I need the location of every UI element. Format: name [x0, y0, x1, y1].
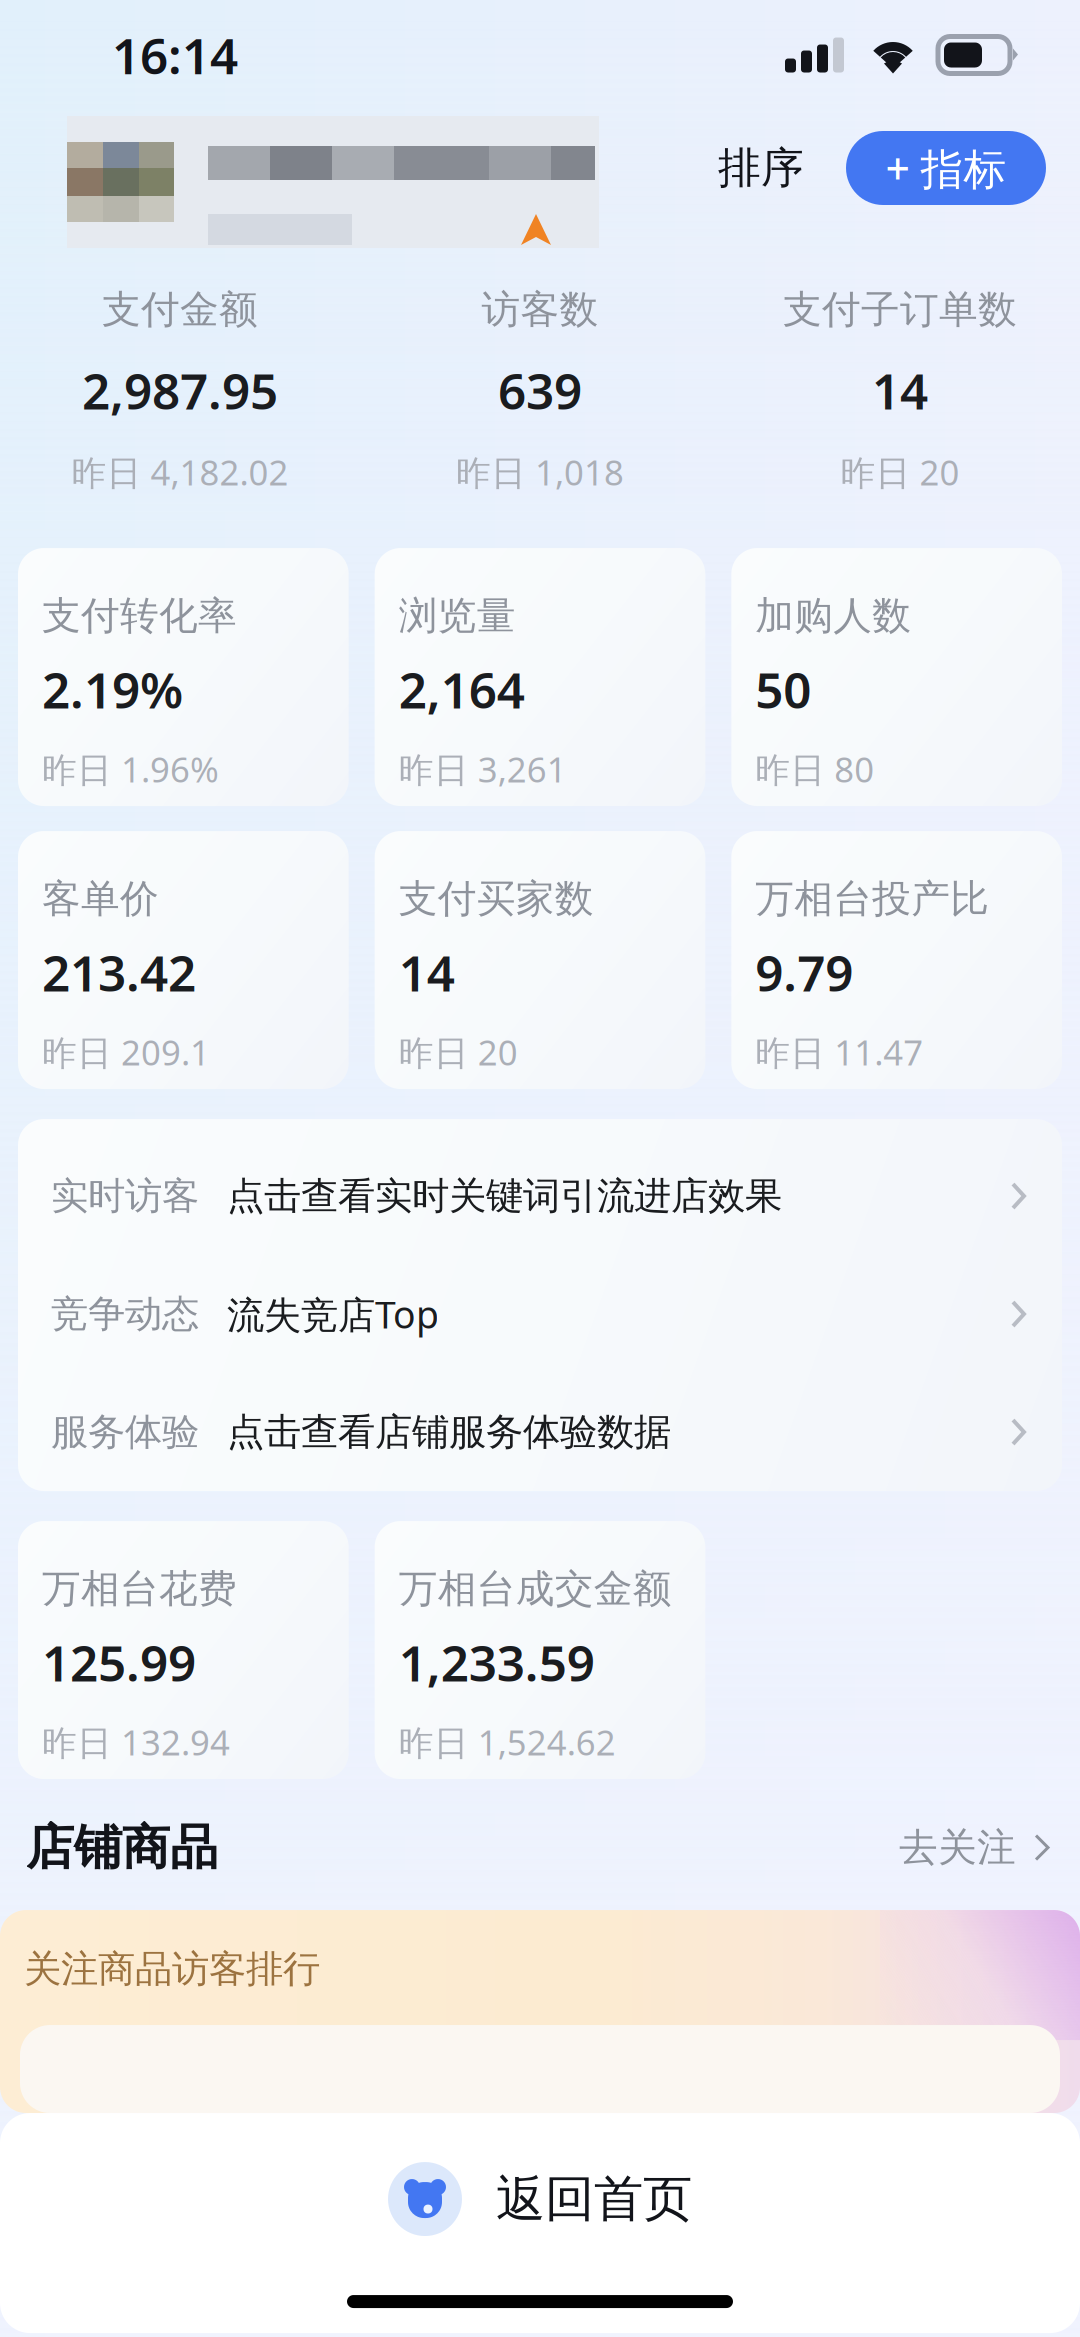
staticText: 支付买家数 [399, 875, 594, 922]
button[interactable]: 客单价 [18, 831, 349, 1089]
staticText: 昨日 1,018 [456, 449, 624, 495]
button[interactable]: 万相台花费 [18, 1521, 349, 1779]
staticText: 9.79 [755, 939, 853, 1005]
staticText: 点击查看店铺服务体验数据 [227, 1409, 671, 1455]
staticText: 50 [755, 656, 811, 722]
staticText: 加购人数 [755, 592, 911, 639]
button[interactable]: 排序 [718, 142, 804, 194]
button[interactable]: 支付买家数 [375, 831, 705, 1089]
staticText: 浏览量 [399, 592, 516, 639]
staticText: 服务体验 [51, 1409, 199, 1455]
button[interactable]: 浏览量 [375, 548, 705, 806]
staticText: 213.42 [42, 939, 196, 1005]
staticText: 支付金额 [102, 286, 258, 333]
staticText: 排序 [718, 142, 804, 194]
staticText: 客单价 [42, 875, 159, 922]
button[interactable]: 返回首页 [0, 2113, 1080, 2285]
staticText: 支付转化率 [42, 592, 237, 639]
button[interactable]: 支付转化率 [18, 548, 349, 806]
staticText: 关注商品访客排行 [24, 1946, 320, 1992]
staticText: 昨日 132.94 [42, 1719, 230, 1765]
staticText: 125.99 [42, 1629, 196, 1695]
staticText: 流失竞店Top [227, 1289, 439, 1339]
button[interactable]: 万相台投产比 [731, 831, 1062, 1089]
staticText: 万相台花费 [42, 1565, 237, 1612]
staticText: 639 [498, 357, 582, 423]
staticText: 1,233.59 [399, 1629, 595, 1695]
button[interactable]: 万相台成交金额 [375, 1521, 705, 1779]
staticText: 昨日 1.96% [42, 746, 219, 792]
staticText: 实时访客 [51, 1173, 199, 1219]
button[interactable]: 去关注 [899, 1818, 1050, 1871]
staticText: 万相台投产比 [755, 875, 989, 922]
staticText: 昨日 80 [755, 746, 874, 792]
staticText: 16:14 [112, 22, 238, 88]
staticText: + 指标 [885, 140, 1006, 196]
staticText: 昨日 20 [399, 1029, 518, 1075]
staticText: 返回首页 [496, 2169, 692, 2229]
staticText: 支付子订单数 [783, 286, 1017, 333]
staticText: 去关注 [899, 1824, 1016, 1871]
staticText: 点击查看实时关键词引流进店效果 [227, 1173, 782, 1219]
staticText: 访客数 [481, 286, 598, 333]
staticText: 2,987.95 [82, 357, 278, 423]
staticText: 2.19% [42, 656, 183, 722]
staticText: 竞争动态 [51, 1291, 199, 1337]
button[interactable]: 加购人数 [731, 548, 1062, 806]
staticText: 昨日 209.1 [42, 1029, 210, 1075]
staticText: 昨日 4,182.02 [71, 449, 288, 495]
staticText: 14 [399, 939, 455, 1005]
staticText: 14 [872, 357, 928, 423]
staticText: 万相台成交金额 [399, 1565, 672, 1612]
button[interactable]: 竞争动态 [18, 1255, 1062, 1373]
staticText: 昨日 20 [840, 449, 959, 495]
button[interactable]: 服务体验 [18, 1373, 1062, 1491]
staticText: 昨日 1,524.62 [399, 1719, 616, 1765]
button[interactable]: 实时访客 [18, 1137, 1062, 1255]
staticText: 昨日 3,261 [399, 746, 567, 792]
staticText: 2,164 [399, 656, 525, 722]
button[interactable]: + 指标 [846, 131, 1046, 205]
staticText: 昨日 11.47 [755, 1029, 923, 1075]
staticText: 店铺商品 [26, 1818, 218, 1877]
